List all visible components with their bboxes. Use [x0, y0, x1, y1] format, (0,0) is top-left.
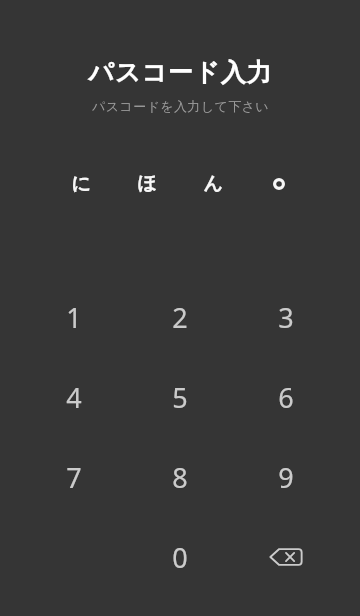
staticText: パスコードを入力して下さい [92, 98, 269, 114]
staticText: 9 [278, 459, 294, 496]
staticText: ん [203, 172, 223, 196]
staticText: 4 [66, 379, 82, 416]
staticText: 5 [172, 379, 188, 416]
button[interactable]: 0 [127, 517, 233, 597]
staticText: 0 [172, 539, 188, 576]
button[interactable]: 6 [233, 357, 339, 437]
button[interactable]: 8 [127, 437, 233, 517]
button[interactable]: 5 [127, 357, 233, 437]
button[interactable]: Backspace [233, 517, 339, 597]
button[interactable]: 2 [127, 277, 233, 357]
button[interactable]: 3 [233, 277, 339, 357]
staticText: 1 [66, 299, 82, 336]
staticText: 3 [278, 299, 294, 336]
staticText: パスコード入力 [88, 57, 273, 88]
staticText: に [71, 172, 91, 196]
staticText: 2 [172, 299, 188, 336]
button[interactable]: 9 [233, 437, 339, 517]
button[interactable]: 4 [21, 357, 127, 437]
staticText: 8 [172, 459, 188, 496]
button[interactable]: 7 [21, 437, 127, 517]
staticText: 6 [278, 379, 294, 416]
staticText: 7 [66, 459, 82, 496]
button[interactable]: 1 [21, 277, 127, 357]
staticText: ほ [137, 172, 157, 196]
